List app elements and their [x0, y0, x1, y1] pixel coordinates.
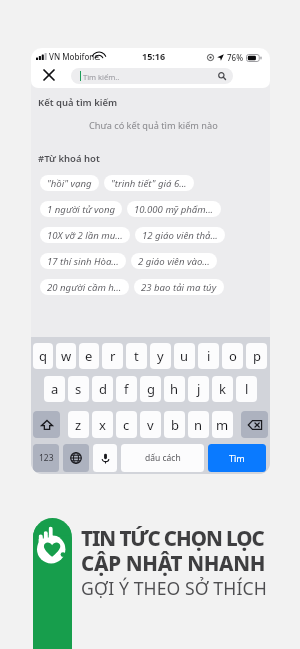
button[interactable]: d [92, 376, 113, 402]
staticText: Tìm kiếm.. [83, 72, 120, 82]
button[interactable]: n [188, 411, 209, 438]
button[interactable]: k [212, 376, 233, 402]
button[interactable]: s [68, 376, 89, 402]
staticText: 123 [39, 452, 54, 464]
staticText: o [229, 347, 237, 365]
staticText: a [51, 380, 59, 398]
staticText: "hồi" vạng [47, 177, 92, 190]
staticText: s [75, 380, 82, 398]
staticText: CẬP NHẬT NHANH [81, 549, 266, 577]
staticText: l [245, 380, 249, 398]
button[interactable]: dấu cách [121, 444, 204, 472]
button[interactable]: q [33, 343, 53, 369]
button[interactable]: w [56, 343, 76, 369]
button[interactable]: h [164, 376, 185, 402]
button[interactable]: o [222, 343, 243, 369]
staticText: 2 giáo viên vào... [138, 255, 210, 268]
staticText: q [39, 347, 47, 365]
button[interactable]: r [102, 343, 123, 369]
staticText: TIN TỨC CHỌN LỌC [81, 524, 264, 552]
staticText: t [134, 347, 139, 365]
button[interactable]: e [79, 343, 99, 369]
button[interactable]: j [188, 376, 209, 402]
button[interactable]: Tìm kiếm.. [71, 68, 233, 84]
staticText: y [157, 347, 164, 365]
button[interactable]: t [126, 343, 147, 369]
button[interactable]: l [236, 376, 257, 402]
staticText: 23 bao tải ma túy [141, 281, 217, 294]
button[interactable]: y [150, 343, 171, 369]
button[interactable]: v [140, 411, 161, 438]
staticText: n [194, 416, 203, 434]
staticText: dấu cách [145, 452, 181, 464]
staticText: Tìm [229, 452, 245, 464]
button[interactable]: 17 thí sinh Hòa... [40, 253, 126, 269]
button[interactable]: i [198, 343, 219, 369]
staticText: b [171, 416, 179, 434]
button[interactable]: b [164, 411, 185, 438]
staticText: 17 thí sinh Hòa... [47, 255, 119, 268]
staticText: 10.000 mỹ phẩm... [134, 203, 214, 216]
staticText: 76% [227, 52, 243, 63]
staticText: Kết quả tìm kiếm [38, 96, 118, 109]
staticText: i [207, 347, 211, 365]
staticText: "trinh tiết" giá 6... [111, 177, 187, 190]
staticText: g [147, 380, 155, 398]
staticText: VN Mobifone [49, 51, 99, 62]
staticText: #Từ khoá hot [38, 152, 100, 165]
button[interactable]: 1 người tử vong [40, 201, 122, 217]
button[interactable]: Close search [38, 64, 60, 86]
staticText: e [85, 347, 93, 365]
staticText: d [99, 380, 107, 398]
button[interactable]: 23 bao tải ma túy [134, 279, 224, 295]
button[interactable]: Shift [33, 411, 60, 438]
button[interactable]: "hồi" vạng [40, 175, 99, 191]
staticText: 1 người tử vong [47, 203, 115, 216]
button[interactable]: 10X vỡ 2 lần mu... [40, 227, 130, 243]
staticText: f [124, 380, 129, 398]
staticText: w [61, 347, 72, 365]
button[interactable]: a [44, 376, 65, 402]
button[interactable]: Backspace [241, 411, 268, 438]
button[interactable]: "trinh tiết" giá 6... [104, 175, 194, 191]
staticText: j [197, 380, 201, 398]
button[interactable]: u [174, 343, 195, 369]
staticText: r [110, 347, 116, 365]
button[interactable]: 10.000 mỹ phẩm... [127, 201, 221, 217]
button[interactable]: Tìm [208, 444, 266, 472]
staticText: v [147, 416, 154, 434]
button[interactable]: 12 giáo viên thả... [135, 227, 225, 243]
button[interactable]: g [140, 376, 161, 402]
button[interactable]: m [212, 411, 233, 438]
staticText: 12 giáo viên thả... [142, 229, 218, 242]
staticText: u [180, 347, 189, 365]
staticText: 10X vỡ 2 lần mu... [47, 229, 123, 242]
staticText: m [216, 416, 229, 434]
button[interactable]: Voice input [93, 444, 117, 472]
staticText: x [99, 416, 106, 434]
button[interactable]: 2 giáo viên vào... [131, 253, 217, 269]
button[interactable]: z [68, 411, 89, 438]
button[interactable]: Switch keyboard [63, 444, 89, 472]
button[interactable]: p [246, 343, 267, 369]
staticText: h [170, 380, 179, 398]
staticText: GỢI Ý THEO SỞ THÍCH [81, 576, 267, 600]
button[interactable]: 20 người cầm h... [40, 279, 129, 295]
staticText: Chưa có kết quả tìm kiếm nào [89, 119, 218, 132]
button[interactable]: f [116, 376, 137, 402]
button[interactable]: c [116, 411, 137, 438]
button[interactable]: 123 [33, 444, 59, 472]
button[interactable]: x [92, 411, 113, 438]
staticText: z [75, 416, 82, 434]
staticText: k [219, 380, 226, 398]
staticText: p [253, 347, 261, 365]
staticText: 20 người cầm h... [47, 281, 122, 294]
staticText: c [123, 416, 130, 434]
staticText: 15:16 [142, 50, 166, 62]
